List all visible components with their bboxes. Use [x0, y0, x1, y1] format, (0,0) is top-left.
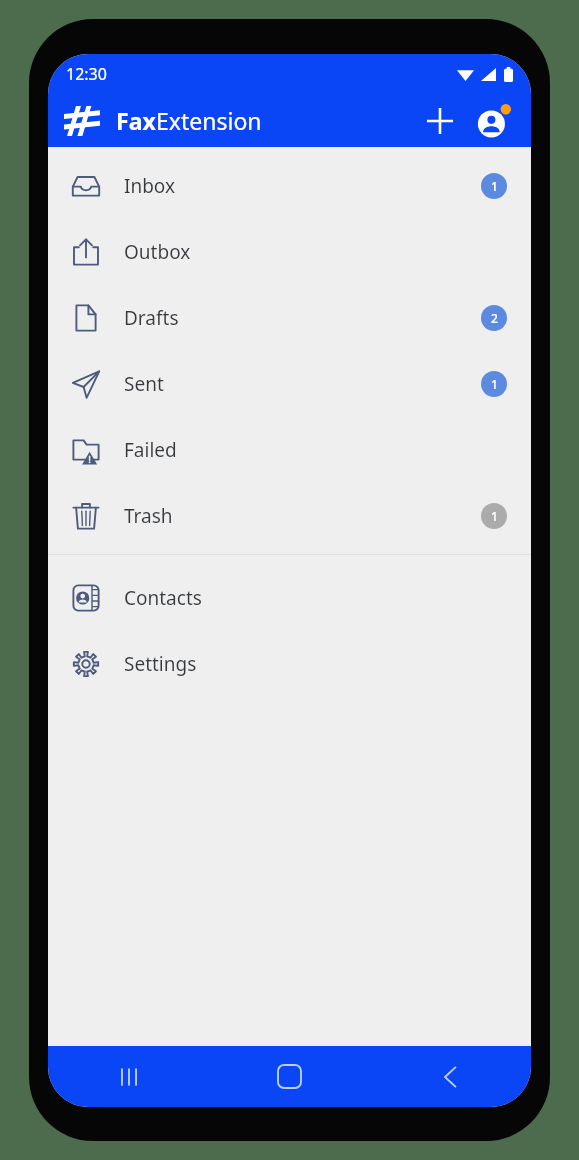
- button[interactable]: Recents: [48, 1046, 209, 1107]
- button[interactable]: Inbox: [48, 153, 531, 219]
- button[interactable]: Home: [209, 1046, 370, 1107]
- staticText: 1: [491, 376, 498, 392]
- staticText: Extension: [156, 105, 262, 136]
- staticText: Inbox: [124, 173, 481, 199]
- button[interactable]: Failed: [48, 417, 531, 483]
- staticText: 12:30: [66, 63, 107, 85]
- button[interactable]: Profile: [471, 97, 519, 145]
- staticText: Drafts: [124, 305, 481, 331]
- staticText: Settings: [124, 651, 507, 677]
- staticText: 1: [491, 508, 498, 524]
- staticText: Contacts: [124, 585, 507, 611]
- staticText: Failed: [124, 437, 507, 463]
- staticText: Sent: [124, 371, 481, 397]
- button[interactable]: Outbox: [48, 219, 531, 285]
- button[interactable]: Contacts: [48, 565, 531, 631]
- button[interactable]: Back: [370, 1046, 531, 1107]
- staticText: 1: [491, 178, 498, 194]
- staticText: Outbox: [124, 239, 507, 265]
- button[interactable]: Trash: [48, 483, 531, 549]
- button[interactable]: Drafts: [48, 285, 531, 351]
- staticText: 2: [491, 310, 498, 326]
- button[interactable]: Settings: [48, 631, 531, 697]
- button[interactable]: New fax: [417, 98, 463, 144]
- staticText: Trash: [124, 503, 481, 529]
- staticText: Fax: [116, 105, 156, 136]
- button[interactable]: Sent: [48, 351, 531, 417]
